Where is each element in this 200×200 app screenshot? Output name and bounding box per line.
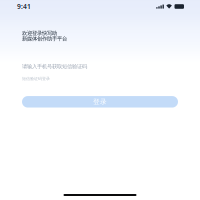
staticText: 请输入手机号获取短信验证码: [22, 63, 87, 70]
button[interactable]: 登录: [22, 96, 178, 108]
staticText: 9:41: [17, 2, 31, 11]
staticText: 新媒体创作助手平台: [22, 36, 67, 42]
staticText: 登录: [93, 98, 107, 106]
staticText: 短信验证码登录: [22, 76, 50, 81]
staticText: 欢迎登录快写助: [22, 30, 57, 37]
